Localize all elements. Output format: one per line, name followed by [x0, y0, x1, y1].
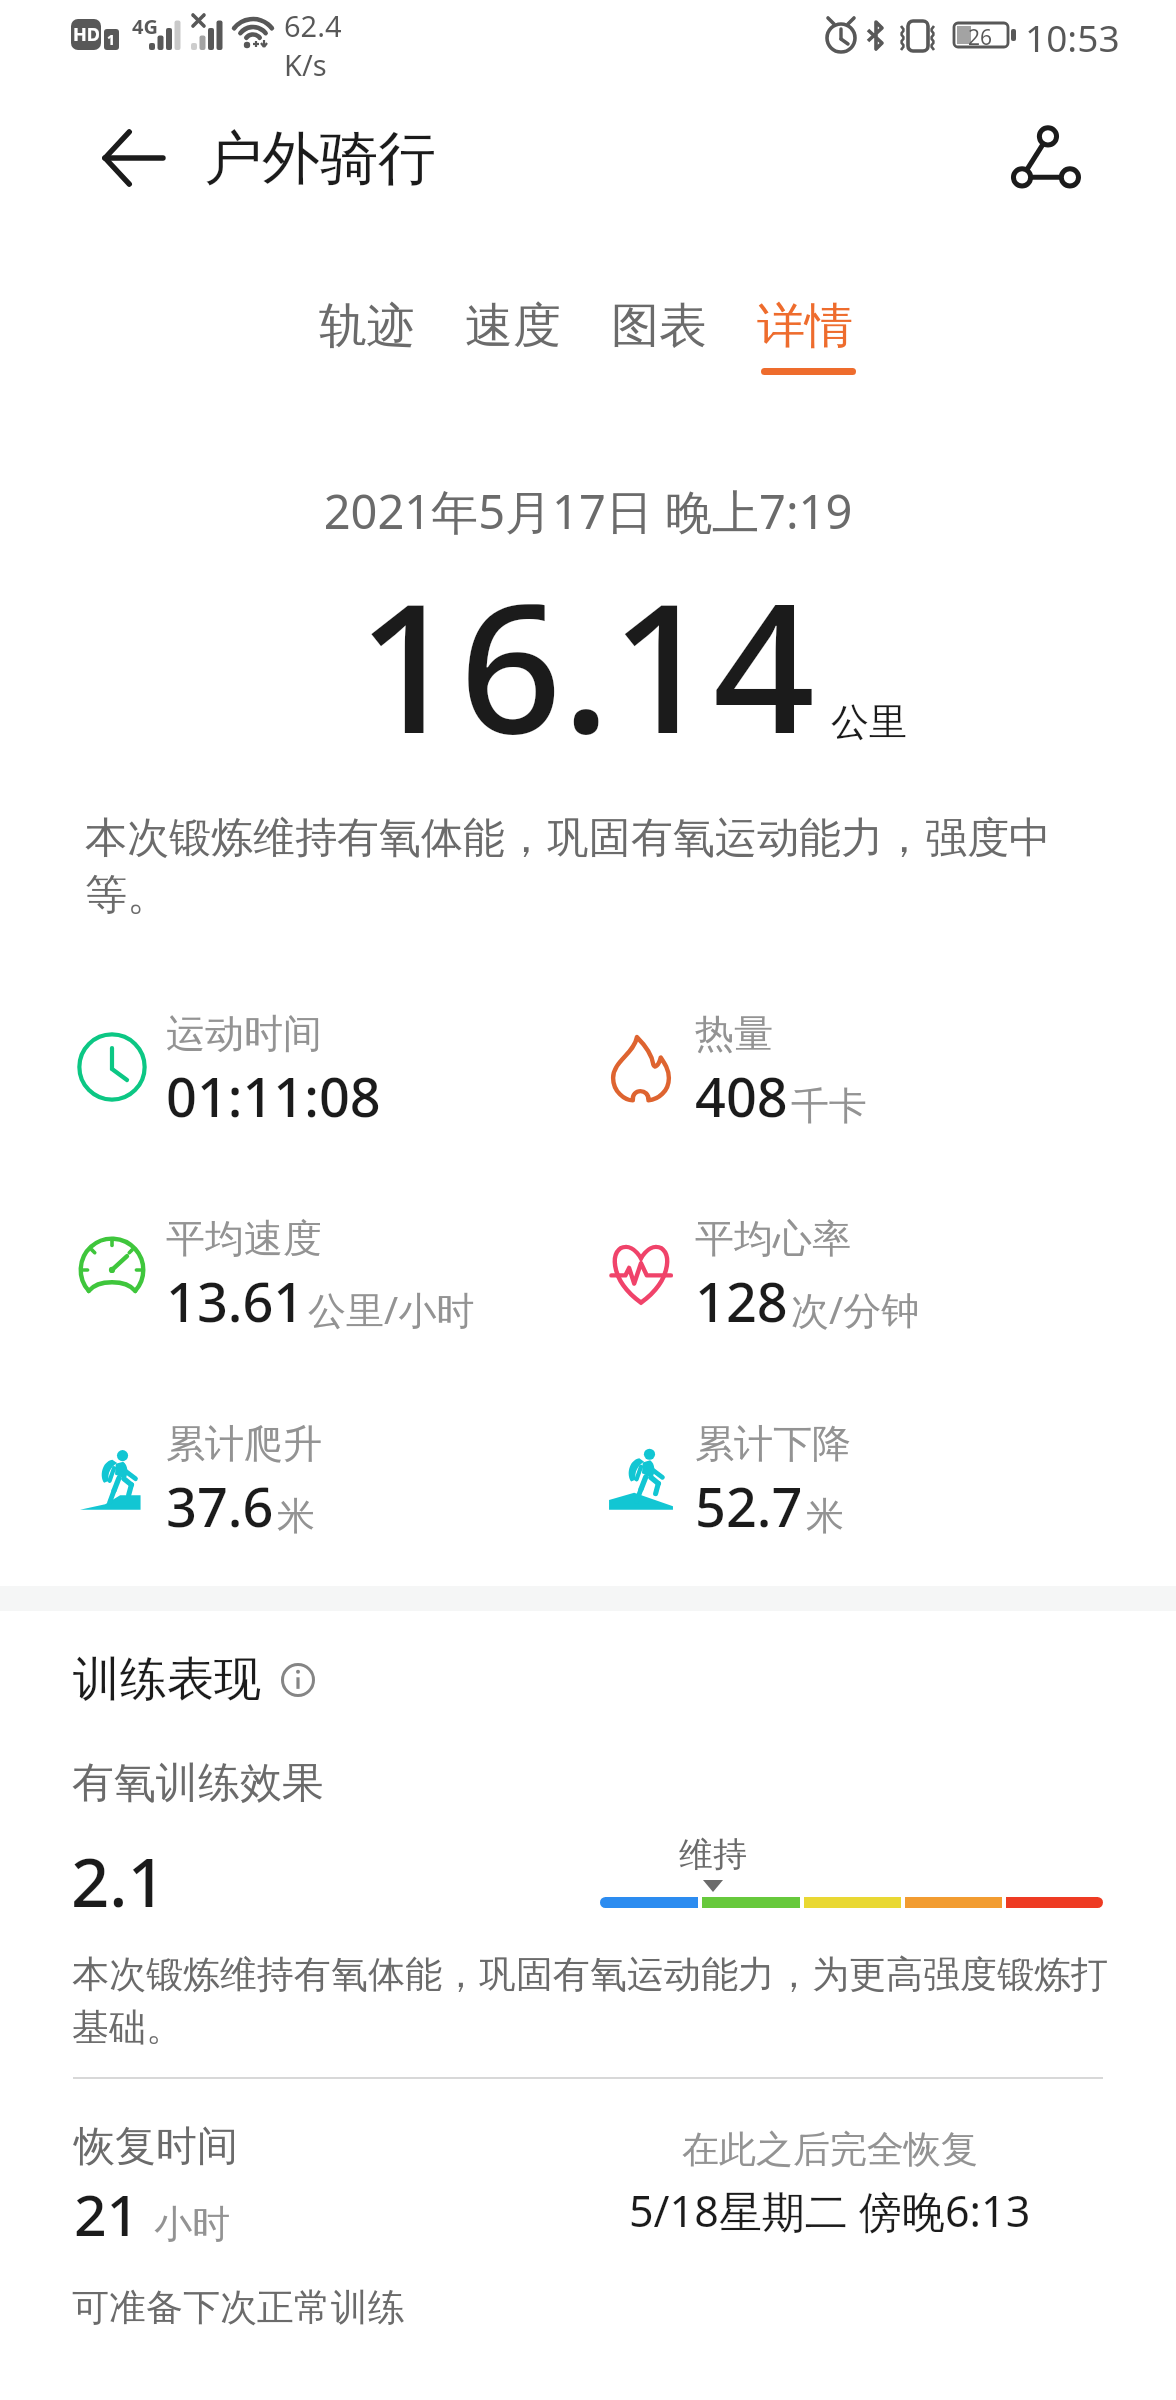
- staticText: 累计下降: [695, 1419, 851, 1468]
- button[interactable]: Back: [83, 108, 183, 208]
- staticText: 有氧训练效果: [72, 1757, 324, 1810]
- staticText: 21: [74, 2175, 140, 2253]
- staticText: HD: [73, 22, 100, 47]
- staticText: 次/分钟: [791, 1283, 920, 1335]
- button[interactable]: 轨迹: [294, 296, 440, 375]
- staticText: 维持: [679, 1833, 747, 1876]
- button[interactable]: 平均速度: [78, 1218, 548, 1348]
- button[interactable]: 运动时间: [78, 1013, 548, 1143]
- staticText: 2021年5月17日 晚上7:19: [0, 479, 1176, 543]
- staticText: 米: [806, 1492, 844, 1540]
- button[interactable]: 图表: [586, 296, 732, 375]
- staticText: 平均速度: [166, 1214, 322, 1263]
- staticText: 在此之后完全恢复: [682, 2126, 978, 2173]
- staticText: 户外骑行: [204, 122, 436, 195]
- button[interactable]: 热量: [607, 1013, 1077, 1143]
- staticText: 10:53: [1025, 12, 1120, 62]
- staticText: 37.6: [166, 1469, 274, 1543]
- staticText: 运动时间: [166, 1009, 322, 1058]
- staticText: 速度: [465, 296, 561, 356]
- staticText: 图表: [611, 296, 707, 356]
- staticText: 恢复时间: [74, 2121, 238, 2173]
- staticText: 轨迹: [319, 296, 415, 356]
- button[interactable]: 速度: [440, 296, 586, 375]
- staticText: 128: [695, 1264, 788, 1338]
- staticText: 408: [695, 1059, 788, 1133]
- button[interactable]: 详情: [732, 296, 878, 375]
- button[interactable]: 平均心率: [607, 1218, 1077, 1348]
- staticText: 62.4: [284, 6, 342, 45]
- staticText: 热量: [695, 1009, 773, 1058]
- staticText: 小时: [154, 2200, 230, 2248]
- button[interactable]: 累计下降: [607, 1423, 1077, 1553]
- staticText: 2.1: [71, 1835, 166, 1926]
- button[interactable]: 累计爬升: [78, 1423, 548, 1553]
- staticText: 01:11:08: [166, 1059, 381, 1133]
- staticText: 训练表现: [73, 1650, 261, 1709]
- staticText: 公里/小时: [308, 1283, 475, 1335]
- staticText: 16.14: [357, 542, 816, 786]
- staticText: 公里: [831, 698, 907, 746]
- staticText: 5/18星期二 傍晚6:13: [629, 2181, 1031, 2240]
- staticText: 13.61: [166, 1264, 305, 1338]
- staticText: 平均心率: [695, 1214, 851, 1263]
- staticText: 累计爬升: [166, 1419, 322, 1468]
- staticText: 本次锻炼维持有氧体能，巩固有氧运动能力，强度中等。: [85, 812, 1131, 921]
- staticText: 26: [968, 23, 993, 52]
- staticText: 本次锻炼维持有氧体能，巩固有氧运动能力，为更高强度锻炼打基础。: [72, 1951, 1128, 2051]
- staticText: 52.7: [695, 1469, 803, 1543]
- staticText: 可准备下次正常训练: [72, 2284, 405, 2331]
- staticText: 4G: [132, 13, 158, 40]
- button[interactable]: Share: [989, 104, 1099, 214]
- staticText: 千卡: [791, 1082, 867, 1130]
- staticText: 米: [277, 1492, 315, 1540]
- staticText: K/s: [284, 45, 327, 84]
- staticText: 详情: [757, 296, 853, 356]
- button[interactable]: Info: [276, 1658, 320, 1702]
- staticText: 1: [107, 30, 116, 49]
